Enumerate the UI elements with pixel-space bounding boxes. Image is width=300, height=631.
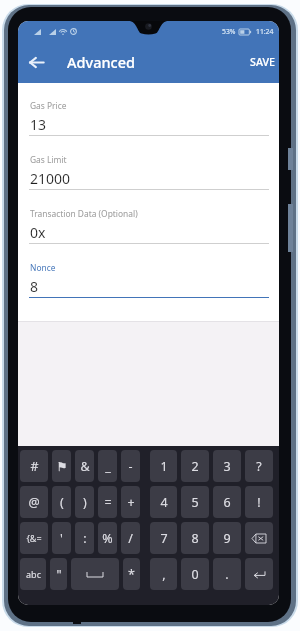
staticText: 8 xyxy=(30,277,39,296)
staticText: 0x xyxy=(30,223,46,242)
button[interactable]: 7 xyxy=(150,522,177,554)
staticText: Transaction Data (Optional) xyxy=(30,208,138,219)
button[interactable]: 6 xyxy=(213,486,241,518)
button[interactable]: Gas Limit xyxy=(18,137,279,191)
staticText: 7 xyxy=(160,530,168,547)
staticText: % xyxy=(102,530,113,547)
button[interactable]: % xyxy=(98,522,117,554)
staticText: 6 xyxy=(223,494,231,511)
staticText: + xyxy=(127,494,135,511)
button[interactable]: Space xyxy=(71,558,119,590)
button[interactable]: + xyxy=(121,486,140,518)
staticText: abc xyxy=(26,568,41,580)
button[interactable]: 9 xyxy=(213,522,241,554)
staticText: SAVE xyxy=(250,55,275,70)
staticText: 53% xyxy=(222,27,236,36)
button[interactable]: Transaction Data (Optional) xyxy=(18,191,279,245)
button[interactable]: . xyxy=(213,558,241,590)
button[interactable]: 0 xyxy=(181,558,209,590)
button[interactable]: Backspace xyxy=(245,522,273,554)
staticText: ? xyxy=(256,458,262,475)
staticText: 8 xyxy=(191,530,199,547)
button[interactable]: _ xyxy=(98,450,117,482)
staticText: Nonce xyxy=(30,262,56,273)
button[interactable]: 5 xyxy=(181,486,209,518)
staticText: 9 xyxy=(223,530,231,547)
staticText: 13 xyxy=(30,115,47,134)
button[interactable]: Gas Price xyxy=(18,83,279,137)
staticText: Gas Price xyxy=(30,100,67,111)
staticText: @ xyxy=(28,494,40,511)
staticText: 2 xyxy=(191,458,199,475)
staticText: ( xyxy=(60,494,64,511)
button[interactable]: # xyxy=(20,450,48,482)
button[interactable]: / xyxy=(121,522,140,554)
button[interactable]: & xyxy=(75,450,94,482)
button[interactable]: @ xyxy=(20,486,48,518)
button[interactable]: 8 xyxy=(181,522,209,554)
staticText: & xyxy=(80,458,90,475)
staticText: * xyxy=(128,566,135,583)
button[interactable]: 3 xyxy=(213,450,241,482)
button[interactable]: 4 xyxy=(150,486,177,518)
button[interactable]: SAVE xyxy=(246,41,279,83)
staticText: = xyxy=(104,494,112,511)
staticText: 1 xyxy=(160,458,168,475)
staticText: " xyxy=(56,566,62,583)
staticText: Gas Limit xyxy=(30,154,67,165)
staticText: 11:24 xyxy=(256,27,274,36)
staticText: _ xyxy=(105,458,111,475)
button[interactable]: * xyxy=(123,558,140,590)
staticText: . xyxy=(225,566,229,583)
button[interactable]: : xyxy=(75,522,94,554)
button[interactable]: ⚑ xyxy=(52,450,71,482)
button[interactable]: {&= xyxy=(20,522,48,554)
button[interactable]: - xyxy=(121,450,140,482)
staticText: - xyxy=(128,458,133,475)
staticText: , xyxy=(162,566,166,583)
button[interactable]: ? xyxy=(245,450,273,482)
staticText: 3 xyxy=(223,458,231,475)
button[interactable]: 2 xyxy=(181,450,209,482)
staticText: 21000 xyxy=(30,169,71,188)
staticText: 0 xyxy=(191,566,199,583)
button[interactable]: Back xyxy=(21,47,51,77)
button[interactable]: ' xyxy=(52,522,71,554)
staticText: Advanced xyxy=(67,52,135,72)
staticText: : xyxy=(83,530,87,547)
button[interactable]: ) xyxy=(75,486,94,518)
staticText: # xyxy=(30,458,39,475)
staticText: ! xyxy=(257,494,261,511)
button[interactable]: ( xyxy=(52,486,71,518)
button[interactable]: 1 xyxy=(150,450,177,482)
staticText: 4 xyxy=(160,494,168,511)
button[interactable]: = xyxy=(98,486,117,518)
button[interactable]: " xyxy=(50,558,67,590)
staticText: ) xyxy=(83,494,87,511)
button[interactable]: Enter xyxy=(245,558,273,590)
button[interactable]: ! xyxy=(245,486,273,518)
button[interactable]: abc xyxy=(20,558,46,590)
button[interactable]: , xyxy=(150,558,177,590)
staticText: 5 xyxy=(191,494,199,511)
button[interactable]: Nonce xyxy=(18,245,279,299)
staticText: {&= xyxy=(26,532,42,544)
staticText: ⚑ xyxy=(56,459,68,474)
staticText: ' xyxy=(60,530,63,547)
staticText: / xyxy=(128,530,133,547)
